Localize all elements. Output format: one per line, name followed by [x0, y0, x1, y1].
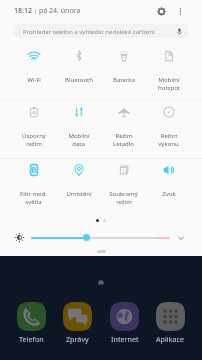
staticText: režim	[26, 140, 42, 148]
staticText: Prohledat telefon a vyhledat nedaleká za…	[23, 27, 155, 35]
button[interactable]: Internet	[110, 302, 139, 344]
staticText: Wi-Fi	[27, 76, 41, 84]
staticText: Zprávy	[66, 334, 89, 344]
staticText: pá 24. února	[39, 6, 81, 16]
button[interactable]: Expand quick settings	[175, 232, 187, 244]
staticText: Filtr mod.	[20, 190, 47, 198]
staticText: Zvuk	[162, 190, 176, 198]
staticText: Letadlo	[113, 140, 134, 148]
button[interactable]: Zvuk	[146, 159, 191, 216]
staticText: Telefon	[19, 334, 44, 344]
staticText: Aplikace	[156, 334, 185, 344]
staticText: Mobilní	[68, 132, 90, 140]
button[interactable]: Settings	[155, 5, 168, 18]
staticText: Internet	[111, 334, 139, 344]
staticText: hotspot	[158, 84, 180, 92]
staticText: Režim	[115, 132, 133, 140]
staticText: 18:12	[14, 6, 32, 16]
button[interactable]: Úsporný	[11, 101, 56, 158]
staticText: data	[72, 140, 85, 148]
button[interactable]: Baterka	[101, 45, 146, 100]
button[interactable]: Wi-Fi	[11, 45, 56, 100]
button[interactable]: Zprávy	[63, 302, 92, 344]
button[interactable]: Umístění	[56, 159, 101, 216]
button[interactable]: Telefon	[17, 302, 46, 344]
staticText: Baterka	[113, 76, 135, 84]
button[interactable]: Mobilní	[56, 101, 101, 158]
button[interactable]: Soukromý	[101, 159, 146, 216]
button[interactable]: Režim	[146, 101, 191, 158]
button[interactable]: Filtr mod.	[11, 159, 56, 216]
staticText: Umístění	[66, 190, 92, 198]
staticText: světla	[25, 198, 42, 206]
staticText: Bluetooth	[65, 76, 93, 84]
staticText: režim	[116, 198, 132, 206]
staticText: Režim	[160, 132, 178, 140]
button[interactable]: Mobilní	[146, 45, 191, 100]
button[interactable]: Aplikace	[156, 302, 185, 344]
staticText: Soukromý	[109, 190, 138, 198]
button[interactable]: Režim	[101, 101, 146, 158]
button[interactable]: Prohledat telefon a vyhledat nedaleká za…	[14, 24, 188, 38]
staticText: Úsporný	[22, 132, 46, 140]
button[interactable]: More options	[174, 5, 187, 18]
button[interactable]: Bluetooth	[56, 45, 101, 100]
staticText: Mobilní	[158, 76, 180, 84]
staticText: výkonu	[158, 140, 179, 148]
